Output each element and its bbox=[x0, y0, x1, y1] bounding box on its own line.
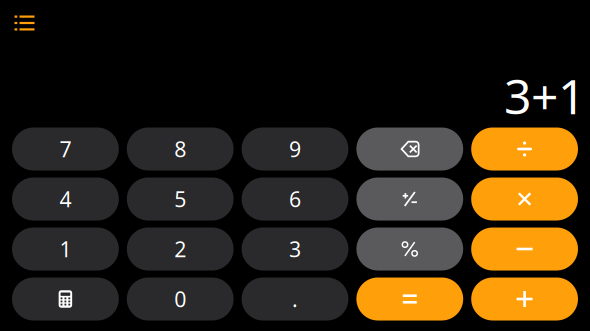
button[interactable]: 4 bbox=[12, 177, 119, 220]
button[interactable]: Percent bbox=[356, 227, 463, 270]
staticText: . bbox=[292, 285, 298, 313]
button[interactable]: 3 bbox=[242, 227, 348, 270]
button[interactable]: Decimal point bbox=[242, 277, 348, 320]
button[interactable]: 7 bbox=[12, 127, 119, 170]
staticText: 3+1 bbox=[504, 64, 585, 127]
button[interactable]: Calculator bbox=[12, 277, 119, 320]
button[interactable]: 8 bbox=[127, 127, 234, 170]
button[interactable]: 9 bbox=[242, 127, 348, 170]
staticText: 9 bbox=[289, 135, 301, 163]
button[interactable]: Delete bbox=[356, 127, 463, 170]
button[interactable]: Minus bbox=[471, 227, 578, 270]
staticText: 7 bbox=[59, 135, 71, 163]
staticText: 5 bbox=[174, 185, 186, 213]
button[interactable]: 5 bbox=[127, 177, 234, 220]
staticText: 4 bbox=[59, 185, 71, 213]
staticText: 8 bbox=[174, 135, 186, 163]
button[interactable]: Plus minus bbox=[356, 177, 463, 220]
button[interactable]: Plus bbox=[471, 277, 578, 320]
staticText: 2 bbox=[174, 235, 186, 263]
button[interactable]: 6 bbox=[242, 177, 348, 220]
button[interactable]: 2 bbox=[127, 227, 234, 270]
button[interactable]: History bbox=[0, 0, 47, 39]
staticText: 0 bbox=[174, 285, 186, 313]
staticText: 6 bbox=[289, 185, 301, 213]
button[interactable]: Multiply bbox=[471, 177, 578, 220]
staticText: 1 bbox=[59, 235, 71, 263]
staticText: 3 bbox=[289, 235, 301, 263]
button[interactable]: 1 bbox=[12, 227, 119, 270]
button[interactable]: 0 bbox=[127, 277, 234, 320]
button[interactable]: Divide bbox=[471, 127, 578, 170]
button[interactable]: Equals bbox=[356, 277, 463, 320]
